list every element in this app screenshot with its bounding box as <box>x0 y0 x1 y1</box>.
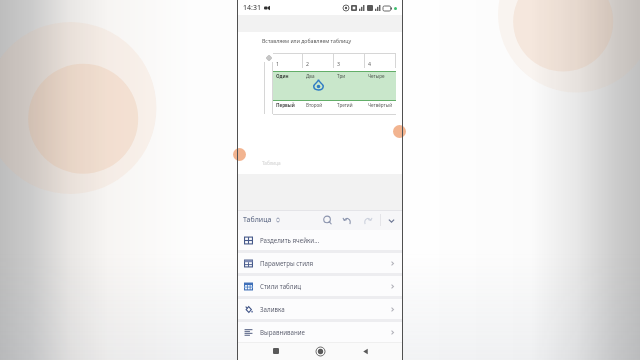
button[interactable]: 4 <box>365 53 396 68</box>
button[interactable]: Один <box>273 72 303 100</box>
staticText: 14:31 <box>243 3 261 13</box>
staticText: 2 <box>306 60 309 67</box>
button[interactable]: More options <box>386 215 397 226</box>
button[interactable]: Второй <box>303 101 334 114</box>
staticText: Три <box>337 73 346 79</box>
button[interactable]: Параметры стиля <box>238 253 402 273</box>
staticText: Четвёртый <box>368 102 393 108</box>
button[interactable]: Redo <box>362 215 373 226</box>
staticText: Таблица <box>243 215 272 225</box>
button[interactable]: 2 <box>303 53 334 68</box>
button[interactable]: Undo <box>342 215 353 226</box>
button[interactable]: Три <box>334 72 365 100</box>
button[interactable]: Четыре <box>365 72 396 100</box>
button[interactable]: Два <box>303 72 334 100</box>
staticText: Вставляем или добавляем таблицу <box>262 37 352 44</box>
staticText: Один <box>276 73 289 79</box>
staticText: Выравнивание <box>260 328 306 336</box>
button[interactable]: Четвёртый <box>365 101 396 114</box>
staticText: Параметры стиля <box>260 259 314 267</box>
staticText: 3 <box>337 60 340 67</box>
staticText: 4 <box>368 60 371 67</box>
button[interactable]: 1 <box>273 53 303 68</box>
button[interactable]: Back <box>358 344 372 358</box>
staticText: Стили таблиц <box>260 282 302 290</box>
staticText: Таблица <box>262 160 281 166</box>
staticText: Разделить ячейки... <box>260 236 320 244</box>
button[interactable]: Recents <box>269 344 283 358</box>
button[interactable]: Заливка <box>238 299 402 319</box>
staticText: Третий <box>337 102 353 108</box>
button[interactable]: Стили таблиц <box>238 276 402 296</box>
button[interactable]: Разделить ячейки... <box>238 230 402 250</box>
button[interactable]: Первый <box>273 101 303 114</box>
button[interactable]: Третий <box>334 101 365 114</box>
staticText: Два <box>306 73 315 79</box>
button[interactable]: Select table <box>264 53 273 62</box>
staticText: Второй <box>306 102 323 108</box>
button[interactable]: Home <box>313 344 327 358</box>
button[interactable]: Таблица <box>243 215 281 225</box>
button[interactable]: 3 <box>334 53 365 68</box>
staticText: Четыре <box>368 73 385 79</box>
button[interactable]: Search <box>322 215 333 226</box>
staticText: Заливка <box>260 305 285 313</box>
button[interactable]: Выравнивание <box>238 322 402 342</box>
staticText: Первый <box>276 102 295 108</box>
staticText: 1 <box>276 60 279 67</box>
